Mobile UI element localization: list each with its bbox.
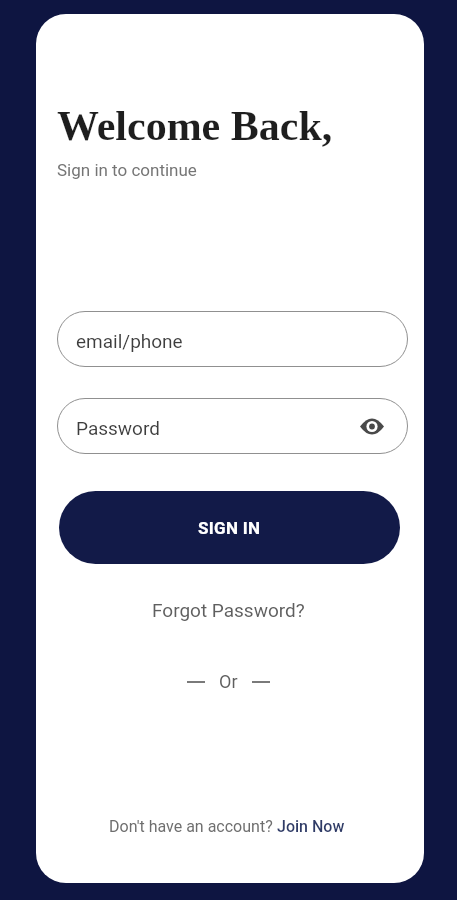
button[interactable]: Password <box>57 398 408 454</box>
button[interactable]: SIGN IN <box>59 491 400 564</box>
button[interactable]: Join Now <box>277 817 345 836</box>
button[interactable]: email/phone <box>57 311 408 367</box>
staticText: Password <box>76 417 160 439</box>
staticText: Sign in to continue <box>57 160 197 180</box>
staticText: Or <box>219 671 238 692</box>
staticText: email/phone <box>76 330 183 352</box>
button[interactable] <box>360 418 384 435</box>
staticText: Welcome Back, <box>57 103 333 150</box>
staticText: Don't have an account? <box>109 817 277 836</box>
staticText: Join Now <box>277 817 345 836</box>
staticText: Forgot Password? <box>152 599 305 621</box>
button[interactable]: Forgot Password? <box>146 595 311 625</box>
staticText: SIGN IN <box>198 518 261 538</box>
